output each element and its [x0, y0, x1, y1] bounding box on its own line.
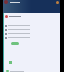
- button[interactable]: [11, 42, 19, 45]
